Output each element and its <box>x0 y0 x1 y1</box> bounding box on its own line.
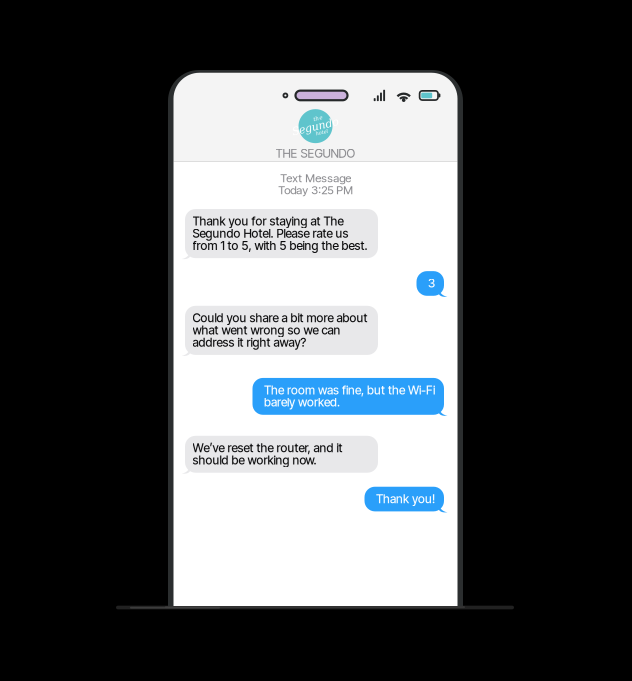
staticText: Segundo <box>291 120 339 133</box>
staticText: the <box>315 116 324 122</box>
staticText: We’ve reset the router, and it should be… <box>192 442 342 466</box>
staticText: hotel <box>314 131 327 136</box>
button[interactable]: We’ve reset the router, and it should be… <box>185 436 378 473</box>
button[interactable]: Thank you! <box>364 487 444 511</box>
button[interactable]: 3 <box>416 271 444 296</box>
button[interactable]: The room was fine, but the Wi-Fi barely … <box>252 378 444 415</box>
button[interactable]: Thank you for staying at The Segundo Hot… <box>185 209 378 258</box>
staticText: The room was fine, but the Wi-Fi barely … <box>264 384 435 408</box>
button[interactable]: the <box>173 101 457 161</box>
staticText: 3 <box>428 277 435 289</box>
staticText: THE SEGUNDO <box>275 146 355 161</box>
staticText: Thank you! <box>376 493 435 505</box>
staticText: Thank you for staying at The Segundo Hot… <box>192 215 367 252</box>
button[interactable]: Could you share a bit more about what we… <box>185 306 378 355</box>
staticText: Text Message Today 3:25 PM <box>278 172 353 196</box>
staticText: Could you share a bit more about what we… <box>192 312 367 348</box>
